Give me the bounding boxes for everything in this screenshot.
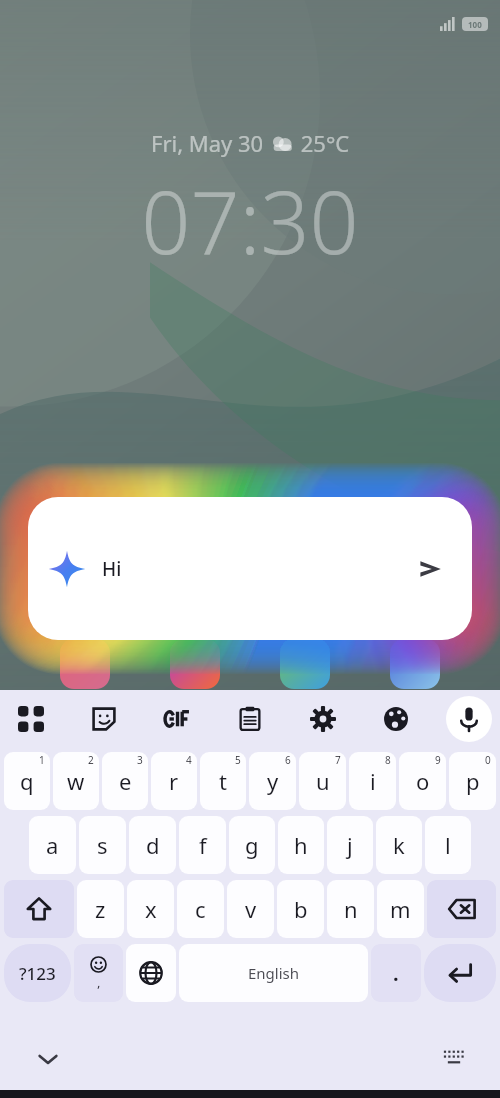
button[interactable]: f bbox=[179, 816, 226, 874]
staticText: 4 bbox=[186, 753, 192, 767]
button[interactable]: i bbox=[349, 752, 396, 810]
button[interactable]: Emoji bbox=[74, 944, 123, 1002]
button[interactable]: u bbox=[299, 752, 346, 810]
staticText: y bbox=[267, 766, 279, 796]
staticText: x bbox=[145, 894, 157, 924]
staticText: 0 bbox=[485, 753, 491, 767]
button[interactable]: o bbox=[399, 752, 446, 810]
button[interactable]: b bbox=[277, 880, 324, 938]
button[interactable]: l bbox=[425, 816, 471, 874]
button[interactable]: Voice input bbox=[446, 696, 492, 742]
staticText: v bbox=[245, 894, 257, 924]
staticText: p bbox=[466, 766, 480, 796]
staticText: t bbox=[219, 766, 227, 796]
button[interactable]: d bbox=[129, 816, 176, 874]
staticText: k bbox=[393, 830, 405, 860]
staticText: m bbox=[390, 894, 411, 924]
button[interactable]: Hi bbox=[28, 497, 472, 640]
button[interactable]: v bbox=[227, 880, 274, 938]
staticText: i bbox=[370, 766, 376, 796]
button[interactable]: h bbox=[278, 816, 324, 874]
button[interactable]: p bbox=[449, 752, 496, 810]
button[interactable]: e bbox=[102, 752, 148, 810]
staticText: 6 bbox=[285, 753, 291, 767]
staticText: f bbox=[199, 830, 207, 860]
button[interactable]: . bbox=[371, 944, 421, 1002]
button[interactable]: ?123 bbox=[4, 944, 71, 1002]
staticText: l bbox=[445, 830, 451, 860]
button[interactable]: Theme bbox=[373, 696, 419, 742]
button[interactable]: Enter bbox=[424, 944, 496, 1002]
button[interactable]: Language bbox=[126, 944, 176, 1002]
button[interactable]: z bbox=[77, 880, 124, 938]
staticText: Hi bbox=[102, 556, 122, 582]
button[interactable]: a bbox=[29, 816, 76, 874]
staticText: 1 bbox=[39, 753, 45, 767]
staticText: q bbox=[20, 766, 34, 796]
staticText: , bbox=[97, 973, 101, 991]
staticText: 8 bbox=[385, 753, 391, 767]
button[interactable]: r bbox=[151, 752, 197, 810]
staticText: Fri, May 30 bbox=[151, 128, 269, 158]
staticText: 5 bbox=[235, 753, 241, 767]
staticText: 100 bbox=[468, 19, 482, 30]
button[interactable]: GIF bbox=[154, 696, 200, 742]
staticText: u bbox=[316, 766, 330, 796]
staticText: . bbox=[393, 960, 399, 987]
button[interactable]: x bbox=[127, 880, 174, 938]
button[interactable]: Send bbox=[408, 547, 452, 591]
button[interactable]: English bbox=[179, 944, 368, 1002]
staticText: ?123 bbox=[19, 962, 56, 985]
staticText: w bbox=[67, 766, 85, 796]
button[interactable]: s bbox=[79, 816, 126, 874]
staticText: s bbox=[97, 830, 108, 860]
button[interactable]: Backspace bbox=[427, 880, 496, 938]
staticText: 9 bbox=[435, 753, 441, 767]
button[interactable]: k bbox=[376, 816, 422, 874]
staticText: j bbox=[347, 830, 353, 860]
button[interactable]: Stickers bbox=[81, 696, 127, 742]
staticText: 25°C bbox=[295, 128, 350, 158]
staticText: 07:30 bbox=[141, 162, 359, 279]
button[interactable]: q bbox=[4, 752, 50, 810]
button[interactable]: y bbox=[249, 752, 296, 810]
button[interactable]: Shift bbox=[4, 880, 74, 938]
staticText: English bbox=[248, 963, 300, 983]
button[interactable]: m bbox=[377, 880, 424, 938]
staticText: 3 bbox=[137, 753, 143, 767]
button[interactable]: g bbox=[229, 816, 275, 874]
button[interactable]: j bbox=[327, 816, 373, 874]
staticText: z bbox=[95, 894, 106, 924]
staticText: a bbox=[46, 830, 59, 860]
staticText: r bbox=[169, 766, 179, 796]
button[interactable]: c bbox=[177, 880, 224, 938]
button[interactable]: n bbox=[327, 880, 374, 938]
staticText: b bbox=[294, 894, 308, 924]
staticText: h bbox=[294, 830, 308, 860]
button[interactable]: Settings bbox=[300, 696, 346, 742]
staticText: e bbox=[119, 766, 132, 796]
staticText: c bbox=[195, 894, 206, 924]
staticText: 7 bbox=[335, 753, 341, 767]
button[interactable]: t bbox=[200, 752, 246, 810]
button[interactable]: w bbox=[53, 752, 99, 810]
staticText: d bbox=[146, 830, 160, 860]
staticText: n bbox=[344, 894, 358, 924]
button[interactable]: Clipboard bbox=[227, 696, 273, 742]
button[interactable]: Hide keyboard bbox=[30, 1041, 66, 1077]
button[interactable]: Apps bbox=[8, 696, 54, 742]
staticText: o bbox=[416, 766, 430, 796]
button[interactable]: Change keyboard bbox=[436, 1041, 472, 1077]
staticText: g bbox=[245, 830, 259, 860]
staticText: 2 bbox=[88, 753, 94, 767]
